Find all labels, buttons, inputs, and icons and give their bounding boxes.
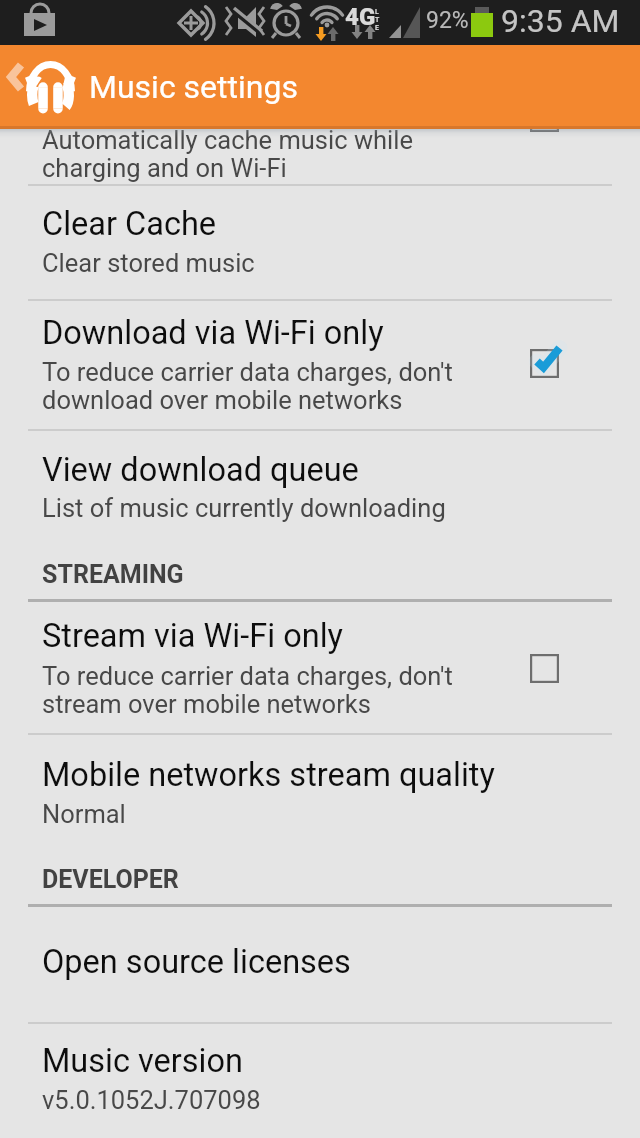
button[interactable]: Unchecked — [530, 654, 559, 683]
staticText: Stream via Wi-Fi only — [42, 617, 343, 655]
staticText: Automatically cache music while — [42, 125, 414, 155]
staticText: To reduce carrier data charges, don't — [42, 357, 453, 387]
staticText: Open source licenses — [42, 943, 351, 981]
staticText: View download queue — [42, 451, 359, 489]
button[interactable]: Unchecked — [0, 606, 640, 733]
button[interactable] — [0, 186, 640, 299]
staticText: Clear Cache — [42, 205, 217, 243]
staticText: v5.0.1052J.707098 — [42, 1085, 261, 1115]
staticText: stream over mobile networks — [42, 689, 371, 719]
staticText: Download via Wi-Fi only — [42, 314, 384, 352]
staticText: L — [375, 8, 379, 16]
staticText: 92% — [426, 7, 469, 34]
button[interactable]: Unchecked — [530, 103, 559, 132]
staticText: STREAMING — [42, 560, 184, 589]
staticText: 4G — [345, 3, 376, 31]
button[interactable]: Checked — [0, 301, 640, 429]
staticText: Normal — [42, 799, 126, 829]
staticText: T — [375, 16, 380, 24]
button[interactable]: Navigate up — [0, 45, 90, 129]
button[interactable] — [0, 1024, 640, 1138]
button[interactable] — [0, 735, 640, 850]
staticText: charging and on Wi-Fi — [42, 153, 287, 183]
staticText: E — [375, 24, 379, 32]
staticText: download over mobile networks — [42, 385, 403, 415]
staticText: List of music currently downloading — [42, 493, 446, 523]
button[interactable]: Checked — [530, 349, 559, 378]
staticText: Music settings — [89, 68, 298, 106]
staticText: Music version — [42, 1042, 243, 1080]
button[interactable] — [0, 431, 640, 545]
button[interactable]: Unchecked — [0, 96, 640, 184]
staticText: To reduce carrier data charges, don't — [42, 661, 453, 691]
staticText: Mobile networks stream quality — [42, 756, 495, 794]
staticText: Clear stored music — [42, 248, 255, 278]
button[interactable] — [0, 910, 640, 1022]
staticText: 9:35 AM — [501, 2, 620, 40]
staticText: DEVELOPER — [42, 865, 179, 894]
